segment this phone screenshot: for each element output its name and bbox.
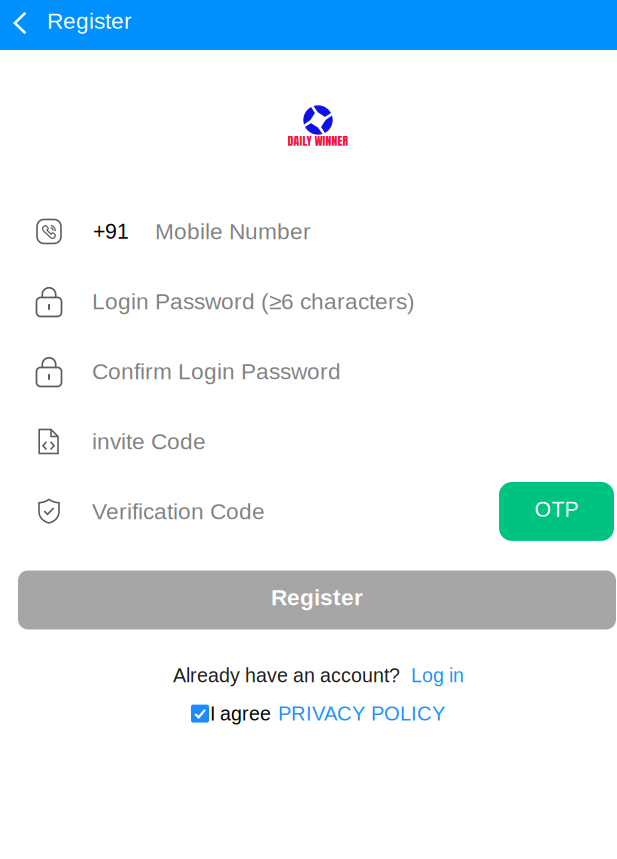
- staticText: Log in: [411, 664, 464, 686]
- staticText: Confirm Login Password: [92, 359, 341, 384]
- staticText: Already have an account?: [173, 664, 400, 686]
- staticText: Register: [271, 585, 363, 610]
- staticText: Verification Code: [92, 499, 265, 524]
- staticText: PRIVACY POLICY: [278, 702, 445, 725]
- button[interactable]: PRIVACY POLICY: [271, 702, 445, 725]
- staticText: Mobile Number: [155, 219, 311, 244]
- button[interactable]: I agree: [191, 705, 209, 723]
- staticText: Register: [47, 8, 132, 34]
- staticText: invite Code: [92, 429, 206, 454]
- staticText: DAILY WINNER: [287, 132, 348, 149]
- staticText: I agree: [210, 703, 271, 725]
- staticText: +91: [93, 219, 129, 243]
- button[interactable]: Register: [18, 570, 616, 629]
- button[interactable]: Log in: [400, 664, 464, 686]
- button[interactable]: Back: [7, 0, 33, 48]
- staticText: Login Password (≥6 characters): [92, 289, 415, 314]
- staticText: OTP: [534, 497, 578, 521]
- button[interactable]: OTP: [499, 482, 614, 541]
